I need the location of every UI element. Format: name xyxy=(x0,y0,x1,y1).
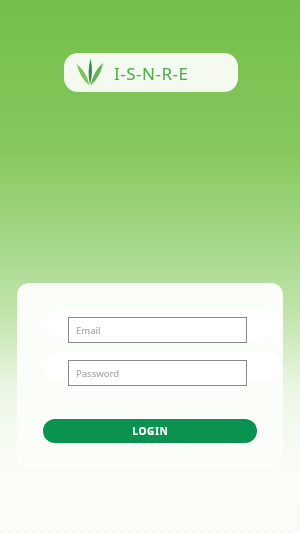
staticText: I-S-N-R-E xyxy=(114,62,189,85)
staticText: Password xyxy=(76,367,119,380)
button[interactable]: LOGIN xyxy=(43,419,257,443)
button[interactable]: Email xyxy=(68,317,247,343)
staticText: Email xyxy=(76,324,101,337)
button[interactable]: I-S-N-R-E logo xyxy=(64,53,238,92)
staticText: LOGIN xyxy=(132,424,169,438)
button[interactable]: Password xyxy=(68,360,247,386)
